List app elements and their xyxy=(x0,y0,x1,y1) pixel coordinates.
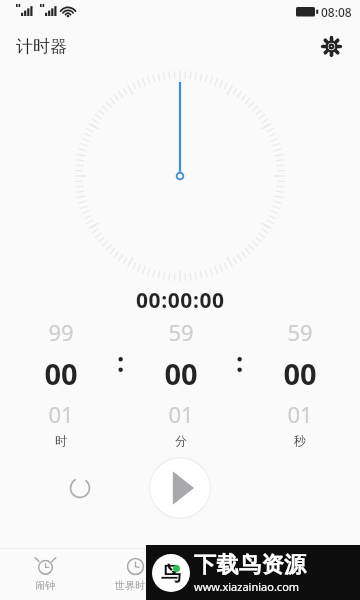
button[interactable]: 99 xyxy=(14,317,108,448)
staticText: 下载鸟资源 xyxy=(194,551,307,579)
staticText: 时 xyxy=(55,433,67,448)
button[interactable]: 世界时间 xyxy=(90,549,180,600)
staticText: 闹钟 xyxy=(35,579,55,592)
staticText: 01 xyxy=(168,399,194,429)
staticText: 59 xyxy=(168,317,194,347)
staticText: 59 xyxy=(287,317,313,347)
button[interactable]: Start xyxy=(149,457,211,519)
staticText: 00 xyxy=(164,354,198,393)
staticText: : xyxy=(236,344,244,379)
button[interactable]: 秒表 xyxy=(180,549,270,600)
staticText: 01 xyxy=(287,399,313,429)
staticText: : xyxy=(117,344,125,379)
button[interactable]: 59 xyxy=(253,317,346,448)
staticText: www.xiazainiao.com xyxy=(194,579,300,594)
staticText: 01 xyxy=(48,399,74,429)
staticText: 秒表 xyxy=(215,579,235,592)
staticText: 计时器 xyxy=(16,36,67,57)
staticText: 秒 xyxy=(294,433,306,448)
button[interactable]: 闹钟 xyxy=(0,549,90,600)
staticText: 00 xyxy=(283,354,317,393)
staticText: 世界时间 xyxy=(115,579,155,592)
staticText: 分 xyxy=(175,433,187,448)
staticText: 99 xyxy=(48,317,74,347)
staticText: 08:08 xyxy=(321,4,352,20)
staticText: 00:00:00 xyxy=(136,286,225,315)
button[interactable]: Reset xyxy=(58,466,102,510)
staticText: 鸟 xyxy=(161,561,181,586)
button[interactable]: 计时器 xyxy=(270,549,360,600)
button[interactable]: Settings xyxy=(314,29,348,63)
staticText: 00 xyxy=(44,354,78,393)
button[interactable]: 59 xyxy=(134,317,227,448)
